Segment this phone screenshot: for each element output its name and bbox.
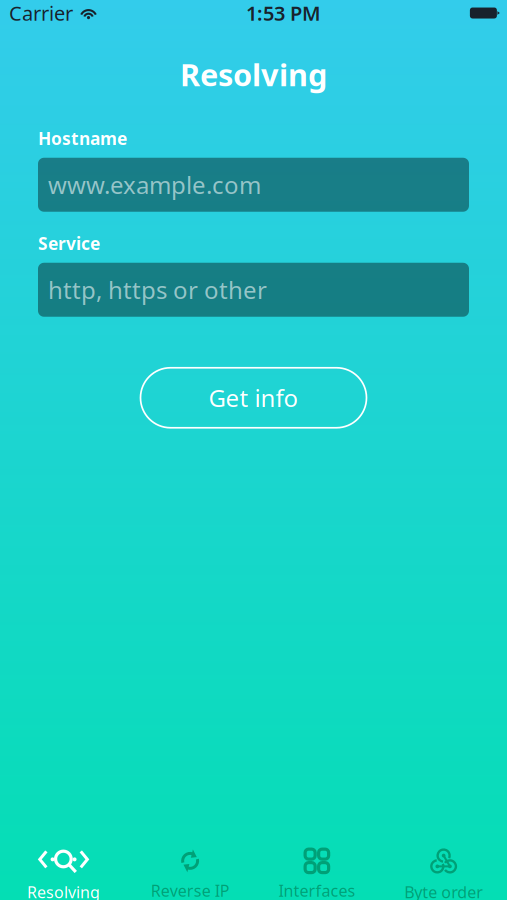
button[interactable]: Interfaces — [253, 850, 380, 900]
staticText: http, https or other — [48, 274, 267, 306]
button[interactable]: Reverse IP — [127, 850, 254, 900]
button[interactable]: Resolving — [0, 850, 127, 900]
staticText: Get info — [208, 382, 298, 414]
staticText: Byte order — [404, 881, 483, 900]
staticText: Hostname — [38, 127, 127, 150]
staticText: Interfaces — [278, 880, 355, 900]
staticText: Service — [38, 232, 100, 255]
staticText: Resolving — [27, 881, 100, 900]
staticText: www.example.com — [48, 169, 261, 201]
button[interactable]: http, https or other — [38, 263, 469, 317]
button[interactable]: www.example.com — [38, 158, 469, 212]
button[interactable]: Get info — [140, 368, 366, 428]
staticText: Reverse IP — [151, 880, 230, 900]
staticText: Carrier — [9, 0, 73, 26]
button[interactable]: Byte order — [380, 850, 507, 900]
staticText: 1:53 PM — [246, 0, 321, 26]
staticText: Resolving — [180, 54, 327, 95]
